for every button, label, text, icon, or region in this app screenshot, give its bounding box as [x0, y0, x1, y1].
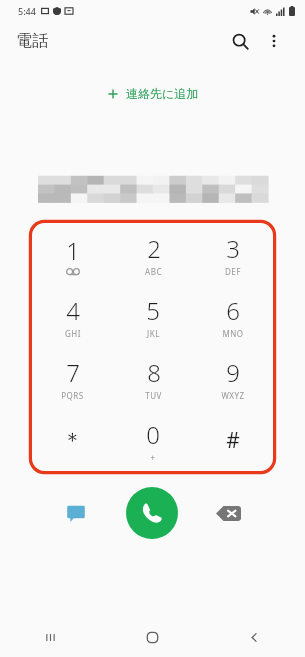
button[interactable]: Recents: [0, 617, 101, 657]
staticText: 連絡先に追加: [126, 86, 199, 101]
button[interactable]: Send message: [26, 477, 126, 549]
staticText: TUV: [145, 390, 162, 401]
staticText: MNO: [222, 328, 244, 339]
staticText: #: [226, 426, 240, 455]
staticText: ＊: [62, 427, 83, 453]
button[interactable]: 1: [32, 223, 113, 285]
staticText: WXYZ: [221, 390, 245, 401]
button[interactable]: 連絡先に追加: [99, 82, 207, 105]
staticText: ABC: [145, 266, 162, 277]
button[interactable]: Backspace: [178, 477, 279, 549]
staticText: JKL: [147, 328, 160, 339]
button[interactable]: 9: [193, 347, 273, 409]
staticText: 7: [66, 356, 80, 389]
button[interactable]: Back: [203, 617, 305, 657]
button[interactable]: Search: [223, 24, 257, 58]
staticText: 2: [147, 232, 161, 265]
staticText: 5: [146, 294, 160, 327]
button[interactable]: Home: [101, 617, 203, 657]
button[interactable]: 5: [113, 285, 193, 347]
staticText: DEF: [225, 266, 241, 277]
staticText: 5:44: [18, 5, 36, 17]
staticText: +: [150, 452, 156, 463]
staticText: 6: [226, 294, 240, 327]
button[interactable]: More options: [259, 26, 289, 56]
button[interactable]: #: [193, 409, 273, 471]
button[interactable]: 2: [113, 223, 193, 285]
staticText: 電話: [16, 31, 48, 51]
button[interactable]: 7: [32, 347, 113, 409]
staticText: 0: [146, 418, 160, 451]
staticText: PQRS: [61, 390, 84, 401]
staticText: 3: [226, 232, 240, 265]
button[interactable]: 0: [113, 409, 193, 471]
button[interactable]: Call: [126, 487, 178, 539]
button[interactable]: ＊: [32, 409, 113, 471]
button[interactable]: 3: [193, 223, 273, 285]
button[interactable]: 6: [193, 285, 273, 347]
staticText: GHI: [65, 328, 81, 339]
button[interactable]: 4: [32, 285, 113, 347]
staticText: 9: [226, 356, 240, 389]
staticText: 8: [147, 356, 161, 389]
staticText: 4: [66, 294, 80, 327]
button[interactable]: 8: [113, 347, 193, 409]
staticText: 1: [66, 234, 80, 267]
